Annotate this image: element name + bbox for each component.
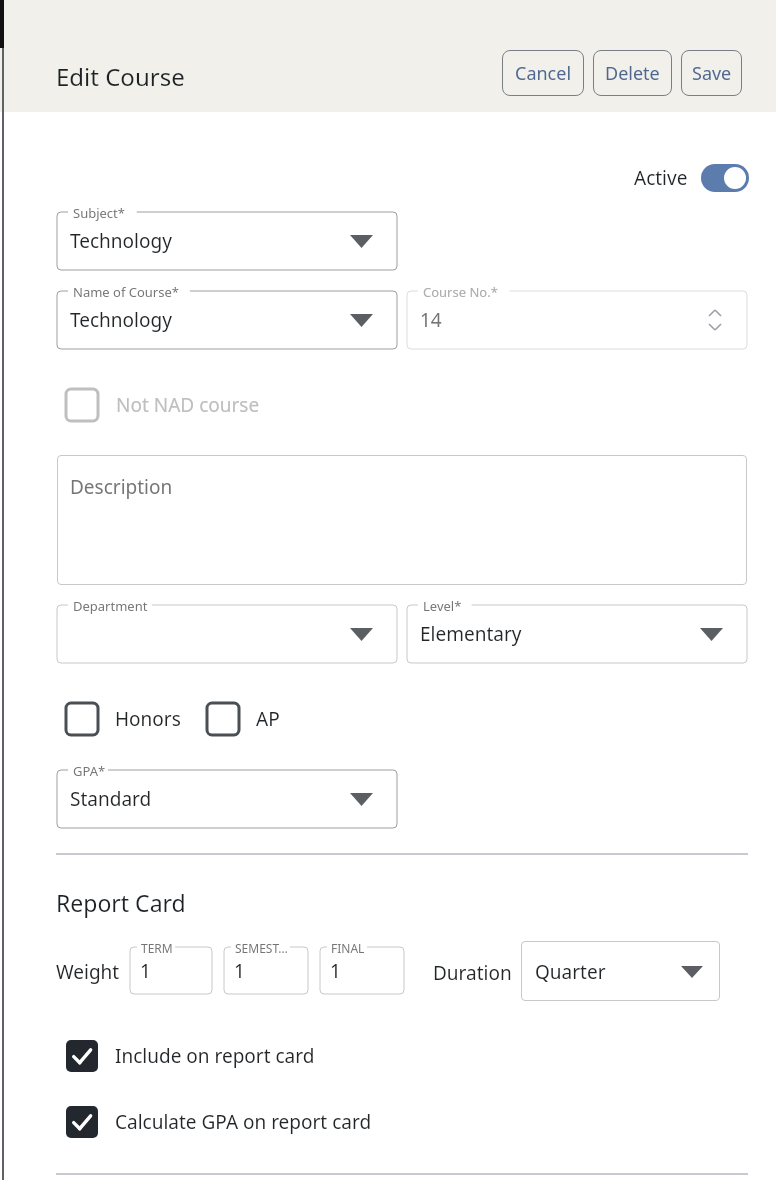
staticText: Technology (70, 228, 172, 254)
button[interactable]: Include on report card (66, 1040, 315, 1072)
staticText: Edit Course (56, 60, 185, 93)
staticText: Description (70, 474, 173, 500)
button[interactable]: FINAL (320, 947, 404, 994)
button[interactable]: Save (681, 50, 742, 96)
staticText: FINAL (331, 940, 365, 956)
button[interactable]: Calculate GPA on report card (66, 1106, 372, 1138)
staticText: Quarter (535, 959, 606, 985)
staticText: Duration (433, 960, 512, 986)
button[interactable]: AP (207, 703, 280, 735)
staticText: Honors (115, 706, 181, 732)
staticText: AP (256, 706, 280, 732)
staticText: Active (634, 165, 688, 191)
staticText: Cancel (515, 61, 572, 86)
staticText: Level* (423, 597, 462, 615)
staticText: Course No.* (423, 283, 498, 301)
button[interactable]: Honors (66, 703, 181, 735)
button[interactable]: Not NAD course (66, 389, 260, 421)
staticText: Report Card (56, 887, 186, 918)
staticText: Name of Course* (73, 283, 179, 301)
staticText: 1 (140, 958, 151, 984)
button[interactable]: TERM (130, 947, 212, 994)
button[interactable]: Quarter (521, 941, 720, 1001)
staticText: Technology (70, 307, 172, 333)
button[interactable]: Delete (593, 50, 672, 96)
button[interactable]: Subject* (57, 212, 397, 270)
button[interactable]: SEMEST… (224, 947, 308, 994)
staticText: TERM (141, 940, 173, 956)
button[interactable]: Active toggle (701, 164, 749, 192)
button[interactable]: GPA* (57, 770, 397, 828)
staticText: Calculate GPA on report card (115, 1109, 372, 1135)
button[interactable]: Level* (407, 605, 747, 663)
staticText: 14 (420, 307, 442, 333)
staticText: Save (692, 61, 732, 86)
staticText: Standard (70, 786, 152, 812)
button[interactable]: Cancel (502, 50, 584, 96)
staticText: Not NAD course (116, 392, 260, 418)
staticText: Include on report card (115, 1043, 315, 1069)
button[interactable]: Department (57, 605, 397, 663)
staticText: 1 (330, 958, 341, 984)
staticText: SEMEST… (235, 940, 288, 956)
staticText: Elementary (420, 621, 522, 647)
staticText: Subject* (73, 204, 125, 222)
staticText: 1 (234, 958, 245, 984)
staticText: Weight (56, 959, 120, 985)
staticText: Department (73, 597, 148, 615)
button[interactable]: Name of Course* (57, 291, 397, 349)
staticText: Delete (605, 61, 660, 86)
button[interactable]: Description (57, 455, 747, 585)
button[interactable]: Course No.* (407, 291, 747, 349)
staticText: GPA* (73, 762, 106, 780)
